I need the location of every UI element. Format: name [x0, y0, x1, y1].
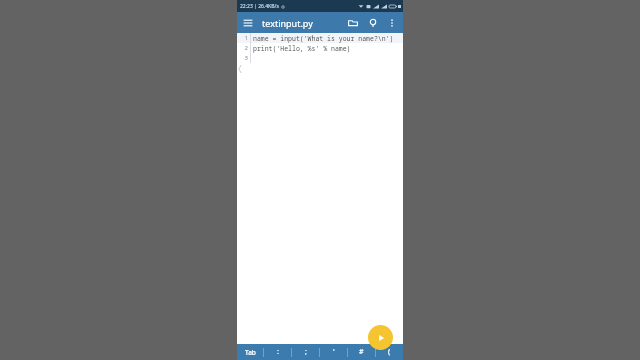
staticText: '	[333, 347, 335, 357]
staticText: textinput.py	[262, 17, 313, 29]
button[interactable]: :	[264, 344, 291, 360]
button[interactable]: ;	[292, 344, 319, 360]
button[interactable]: 1	[237, 33, 403, 344]
staticText: :	[277, 347, 279, 357]
button[interactable]: Run	[368, 325, 393, 350]
button[interactable]: Tab	[237, 344, 263, 360]
staticText: 1	[244, 34, 248, 42]
button[interactable]: (	[376, 344, 403, 360]
staticText: ;	[305, 347, 307, 357]
button[interactable]: Menu	[237, 12, 258, 33]
button[interactable]: More options	[383, 14, 401, 32]
staticText: Tab	[245, 348, 256, 357]
staticText: print('Hello, %s' % name)	[253, 44, 351, 53]
staticText: (	[388, 347, 391, 357]
staticText: 3	[244, 54, 248, 62]
staticText: name = input('What is your name?\n')	[253, 34, 394, 43]
button[interactable]: '	[320, 344, 347, 360]
staticText: 2	[244, 44, 248, 52]
staticText: 22:23 | 26.4KB/s	[240, 3, 279, 10]
button[interactable]: Hint	[363, 13, 383, 33]
staticText: #	[359, 347, 364, 357]
button[interactable]: Open file	[343, 13, 363, 33]
button[interactable]: #	[348, 344, 375, 360]
